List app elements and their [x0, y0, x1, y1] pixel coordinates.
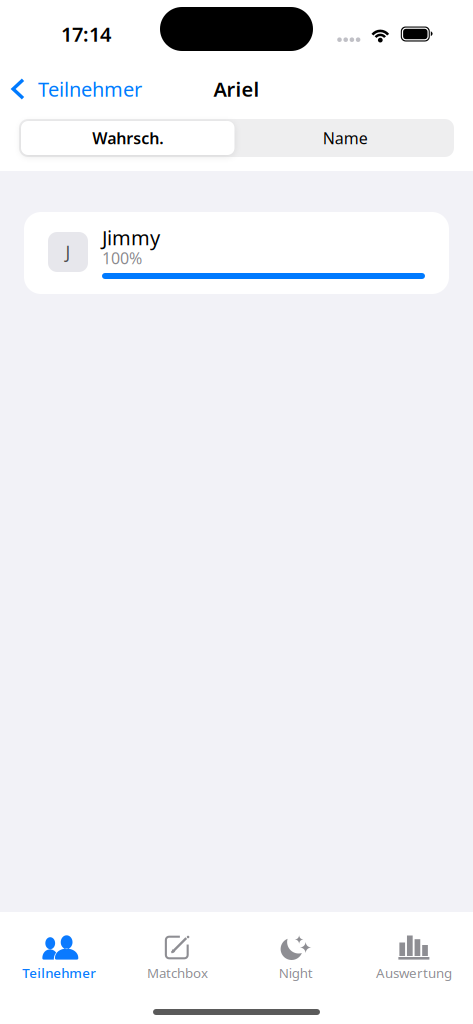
staticText: Auswertung	[376, 964, 452, 982]
staticText: Teilnehmer	[22, 964, 96, 982]
button[interactable]: Night	[236, 925, 355, 990]
staticText: Night	[279, 964, 313, 982]
staticText: Name	[323, 127, 368, 149]
button[interactable]: Teilnehmer	[0, 925, 118, 990]
button[interactable]: Teilnehmer	[0, 70, 142, 108]
staticText: Matchbox	[147, 964, 208, 982]
staticText: 17:14	[61, 21, 111, 47]
staticText: Ariel	[213, 76, 259, 102]
button[interactable]: J	[24, 212, 449, 294]
button[interactable]: Auswertung	[355, 925, 473, 990]
staticText: 100%	[102, 247, 142, 269]
staticText: J	[65, 240, 70, 263]
button[interactable]: Matchbox	[118, 925, 236, 990]
staticText: Teilnehmer	[38, 76, 142, 102]
staticText: Jimmy	[102, 224, 160, 251]
button[interactable]: Name	[236, 119, 454, 157]
staticText: Wahrsch.	[92, 127, 163, 149]
button[interactable]: Wahrsch.	[19, 119, 236, 157]
